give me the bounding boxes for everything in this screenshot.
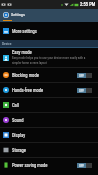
button[interactable]: Storage <box>0 143 98 157</box>
staticText: Call <box>12 103 98 108</box>
button[interactable]: Power saving mode <box>0 158 98 172</box>
button[interactable]: OFF <box>77 88 92 93</box>
staticText: Blocking mode <box>12 73 77 78</box>
staticText: OFF <box>79 89 84 93</box>
button[interactable]: Hands-free mode <box>0 83 98 97</box>
staticText: OFF <box>79 164 84 168</box>
staticText: OFF <box>79 74 84 78</box>
button[interactable]: OFF <box>77 163 92 168</box>
staticText: Sound <box>12 118 98 123</box>
staticText: More settings <box>12 29 37 34</box>
button[interactable]: Easy mode <box>0 48 98 67</box>
staticText: Easy mode <box>12 50 32 55</box>
button[interactable]: Display <box>0 128 98 142</box>
button[interactable]: Sound <box>0 113 98 127</box>
staticText: Easy mode helps you to use your device m… <box>12 56 95 65</box>
staticText: Storage <box>12 148 98 153</box>
staticText: Settings <box>11 12 25 17</box>
button[interactable]: Blocking mode <box>0 68 98 82</box>
staticText: Device <box>2 42 12 46</box>
button[interactable]: Call <box>0 98 98 112</box>
staticText: Hands-free mode <box>12 88 77 93</box>
staticText: Display <box>12 133 98 138</box>
staticText: 2:55 PM <box>80 2 96 7</box>
button[interactable]: More settings <box>0 22 98 40</box>
button[interactable]: OFF <box>77 73 92 78</box>
staticText: Power saving mode <box>12 163 77 168</box>
